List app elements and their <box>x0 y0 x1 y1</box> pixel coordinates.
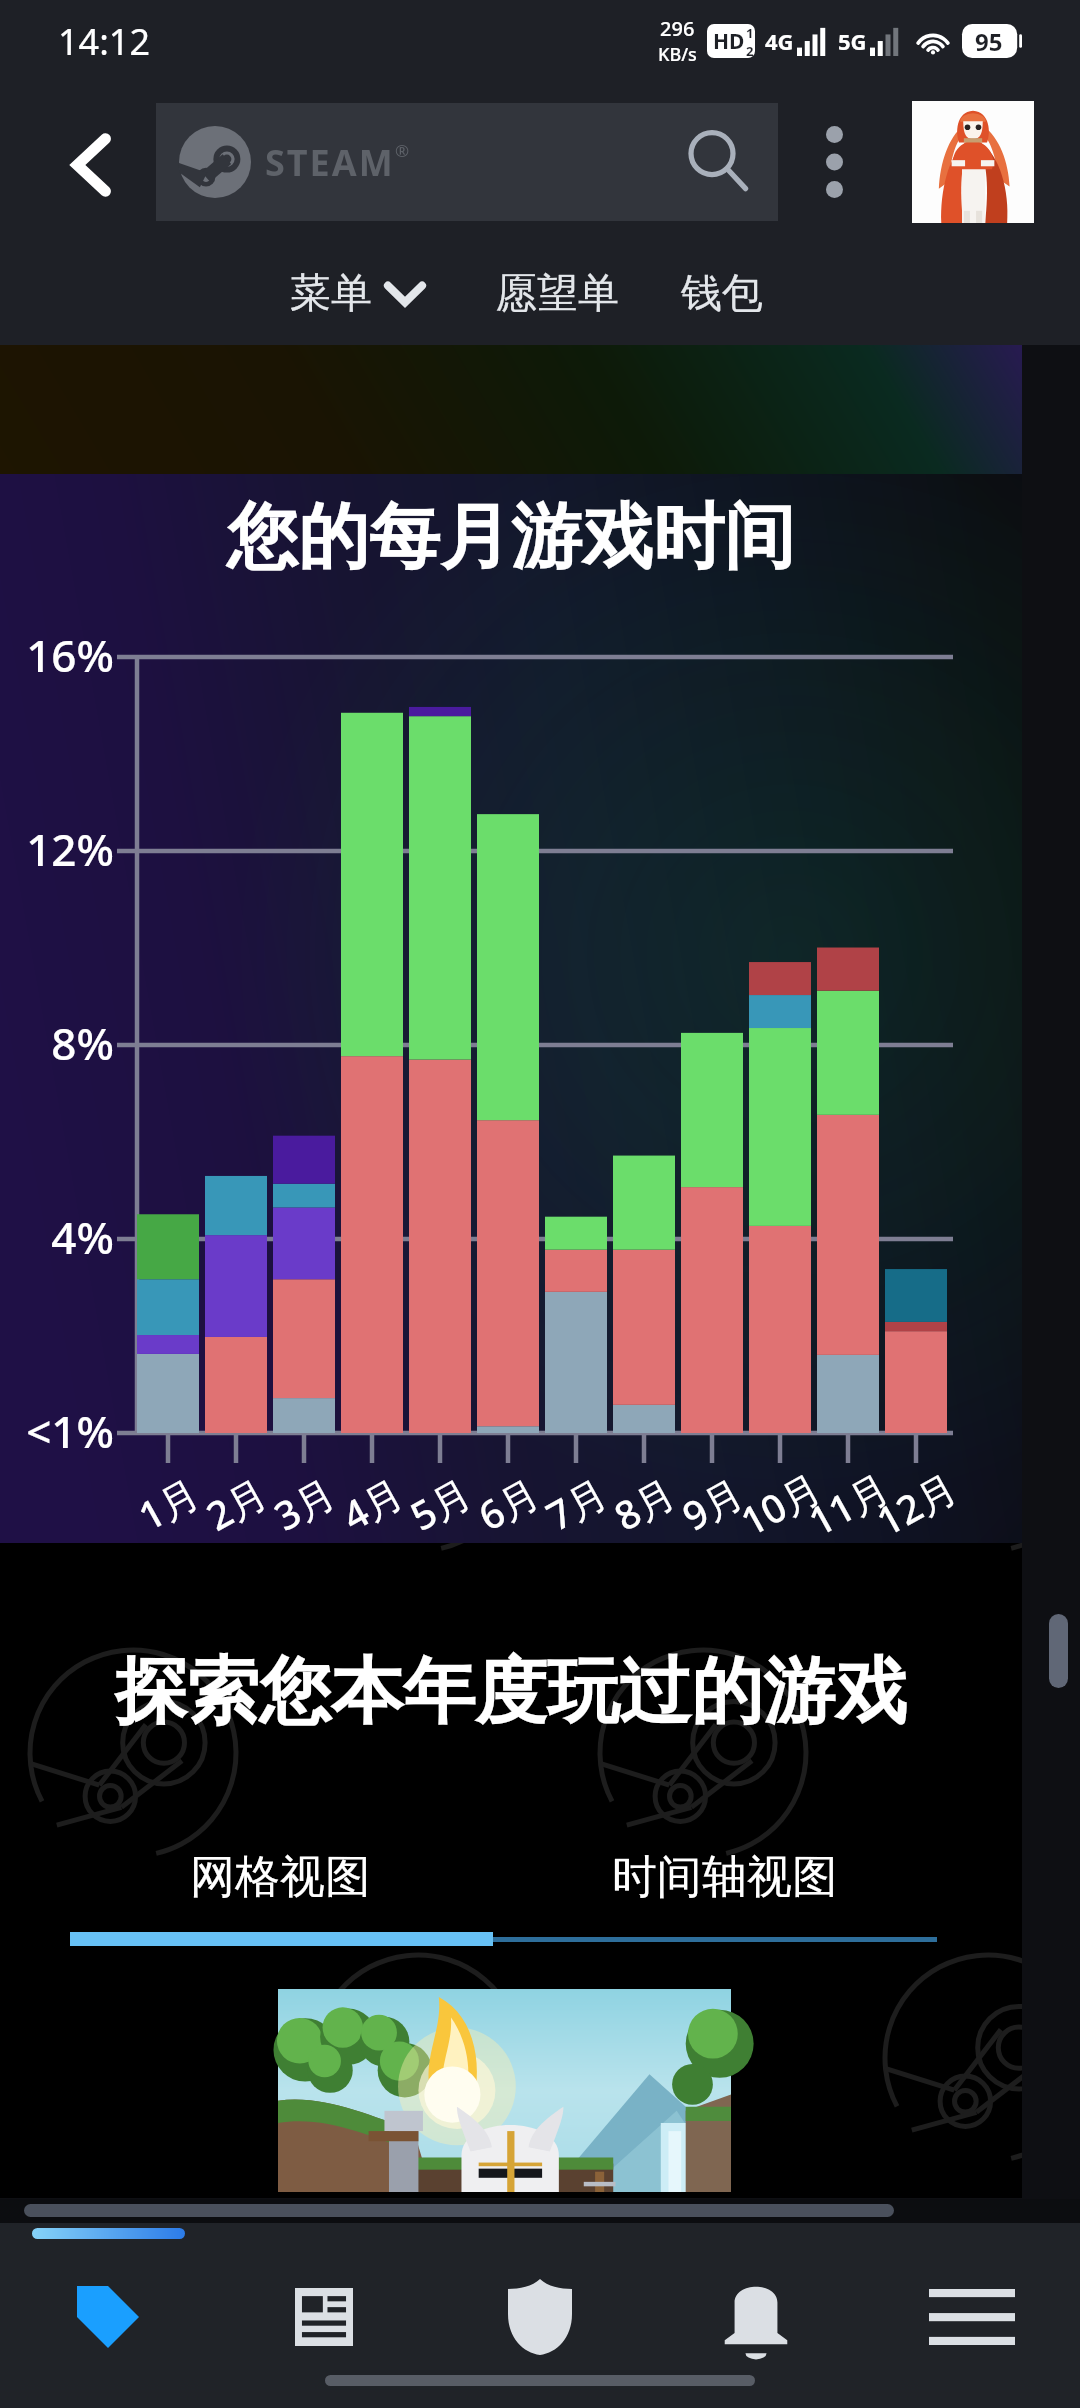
staticText: 296 <box>660 15 695 42</box>
staticText: 12月 <box>851 1451 981 1543</box>
staticText: 5月 <box>375 1451 505 1543</box>
button[interactable]: 时间轴视图 <box>578 1833 870 1921</box>
staticText: 时间轴视图 <box>612 1849 837 1906</box>
staticText: 11月 <box>783 1451 913 1543</box>
staticText: 4% <box>7 1207 114 1267</box>
staticText: 4G <box>765 26 794 56</box>
button[interactable]: Game <box>278 1989 731 2192</box>
button[interactable]: Menu <box>864 2267 1080 2367</box>
staticText: 95 <box>975 25 1003 58</box>
button[interactable]: 菜单 <box>278 258 436 330</box>
staticText: 8月 <box>579 1451 709 1543</box>
staticText: 12% <box>7 819 114 879</box>
staticText: HD <box>713 27 745 56</box>
staticText: <1% <box>7 1401 114 1461</box>
staticText: 探索您本年度玩过的游戏 <box>0 1647 1022 1738</box>
button[interactable]: Search <box>660 103 778 221</box>
staticText: 您的每月游戏时间 <box>0 493 1022 582</box>
staticText: 8% <box>7 1013 114 1073</box>
staticText: STEAM <box>265 138 395 187</box>
staticText: 2 <box>746 42 754 58</box>
button[interactable]: Back <box>0 82 156 242</box>
staticText: 10月 <box>715 1451 845 1543</box>
staticText: 5G <box>838 26 867 56</box>
staticText: 9月 <box>647 1451 777 1543</box>
staticText: 菜单 <box>290 268 372 320</box>
staticText: 14:12 <box>58 17 151 66</box>
staticText: 7月 <box>511 1451 641 1543</box>
staticText: 4月 <box>307 1451 437 1543</box>
staticText: 1月 <box>103 1451 233 1543</box>
staticText: 1 <box>746 24 754 42</box>
button[interactable]: Profile <box>912 101 1034 223</box>
staticText: 16% <box>7 625 114 685</box>
button[interactable]: 愿望单 <box>486 258 629 330</box>
button[interactable]: 钱包 <box>671 258 773 330</box>
button[interactable]: 网格视图 <box>110 1833 450 1921</box>
staticText: 2月 <box>171 1451 301 1543</box>
staticText: 3月 <box>239 1451 369 1543</box>
button[interactable]: Notifications <box>648 2267 864 2367</box>
button[interactable]: News <box>216 2267 432 2367</box>
button[interactable]: STEAM <box>156 103 778 221</box>
staticText: ® <box>395 139 410 162</box>
staticText: 网格视图 <box>190 1849 370 1906</box>
button[interactable]: Store <box>0 2267 216 2367</box>
staticText: KB/s <box>658 42 697 67</box>
button[interactable]: Community <box>432 2267 648 2367</box>
button[interactable]: More options <box>778 82 890 242</box>
staticText: 6月 <box>443 1451 573 1543</box>
